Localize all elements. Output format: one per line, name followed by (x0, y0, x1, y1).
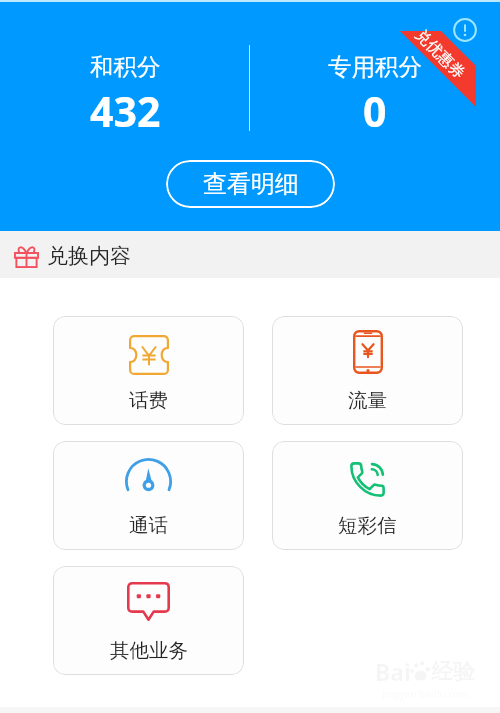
staticText: 查看明细 (203, 169, 299, 199)
staticText: 0 (363, 83, 387, 139)
staticText: 兑换内容 (47, 243, 131, 269)
button[interactable]: 兑优惠券 (398, 8, 478, 108)
staticText: 流量 (348, 388, 387, 413)
staticText: 短彩信 (338, 513, 397, 538)
staticText: 432 (90, 83, 161, 139)
staticText: 话费 (129, 388, 168, 413)
staticText: 和积分 (90, 52, 161, 82)
button[interactable]: Info (453, 18, 477, 42)
button[interactable]: 短彩信 (272, 441, 463, 550)
button[interactable]: 话费 (53, 316, 244, 425)
staticText: 其他业务 (110, 638, 188, 663)
button[interactable]: 其他业务 (53, 566, 244, 675)
button[interactable]: 流量 (272, 316, 463, 425)
staticText: 专用积分 (328, 52, 422, 82)
staticText: Bai (375, 656, 411, 687)
staticText: 兑优惠券 (411, 25, 469, 83)
staticText: 通话 (129, 513, 168, 538)
button[interactable]: 通话 (53, 441, 244, 550)
button[interactable]: 查看明细 (166, 160, 335, 208)
staticText: 经验 (431, 658, 475, 686)
